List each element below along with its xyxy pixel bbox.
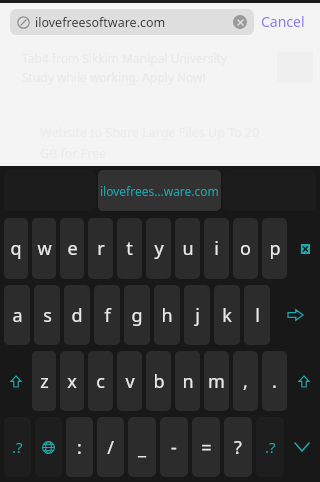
button[interactable]: u [175,218,200,279]
staticText: d [71,303,83,328]
button[interactable]: r [88,218,113,279]
staticText: y [154,236,164,261]
staticText: Tab4 from Sikkim Manipal University [22,50,228,66]
staticText: g [131,303,143,328]
button[interactable]: Reader settings [20,239,58,277]
staticText: Cancel [261,12,305,31]
staticText: ilovefrees…ware.com [100,183,219,199]
button[interactable]: l [244,285,270,345]
staticText: c [96,369,105,394]
button[interactable]: a [4,285,30,345]
staticText: = [201,435,212,460]
staticText: .? [12,437,23,457]
staticText: Study while working. Apply Now! [22,69,206,85]
button[interactable]: p [262,218,287,279]
button[interactable]: y [146,218,171,279]
staticText: k [222,303,232,328]
staticText: ? [234,435,242,460]
staticText: t [126,236,133,261]
staticText: i [214,236,219,261]
staticText: , [243,369,248,394]
button[interactable]: o [233,218,258,279]
button[interactable]: Hide keyboard [288,417,316,477]
button[interactable]: d [64,285,90,345]
staticText: o [240,236,251,261]
button[interactable]: n [175,351,200,411]
button[interactable]: ilovefrees…ware.com [98,170,221,211]
staticText: - [171,435,177,460]
button[interactable]: .? [256,417,284,477]
staticText: .? [265,437,276,457]
staticText: h [161,303,173,328]
staticText: : [77,435,82,460]
button[interactable]: ilovefreesoftware.com [10,9,254,35]
button[interactable]: v [117,351,142,411]
button[interactable]: g [124,285,150,345]
staticText: v [125,369,135,394]
staticText: _ [138,435,146,460]
staticText: s [43,303,52,328]
button[interactable]: _ [128,417,156,477]
button[interactable]: Backspace [291,218,316,279]
staticText: w [37,236,52,261]
button[interactable]: w [32,218,56,279]
staticText: l [255,303,260,328]
button[interactable]: / [97,417,124,477]
button[interactable]: q [4,218,28,279]
button[interactable]: x [60,351,84,411]
button[interactable]: k [214,285,240,345]
staticText: z [40,369,49,394]
button[interactable]: Shift [291,351,316,411]
button[interactable]: e [60,218,84,279]
button[interactable]: = [192,417,220,477]
staticText: x [67,369,77,394]
button[interactable]: Cancel [254,8,312,35]
button[interactable]: m [204,351,229,411]
button[interactable]: : [66,417,93,477]
staticText: j [195,303,200,328]
staticText: b [153,369,165,394]
button[interactable]: , [233,351,258,411]
button[interactable]: c [88,351,113,411]
button[interactable]: i [204,218,229,279]
button[interactable]: . [262,351,287,411]
button[interactable]: .? [4,417,31,477]
button[interactable]: ? [224,417,252,477]
button[interactable]: z [32,351,56,411]
staticText: r [97,236,105,261]
staticText: n [182,369,194,394]
staticText: . [272,369,277,394]
staticText: f [104,303,111,328]
button[interactable]: Go [274,285,316,345]
button[interactable]: Shift [4,351,28,411]
button[interactable]: Change language [35,417,62,477]
button[interactable]: t [117,218,142,279]
button[interactable]: j [184,285,210,345]
staticText: e [67,236,78,261]
staticText: / [107,435,114,460]
button[interactable]: s [34,285,60,345]
staticText: m [208,369,225,394]
button[interactable]: b [146,351,171,411]
button[interactable]: Clear text [233,15,247,29]
staticText: a [12,303,23,328]
button[interactable]: h [154,285,180,345]
staticText: ilovefreesoftware.com [35,14,166,31]
staticText: q [10,236,22,261]
button[interactable]: - [160,417,188,477]
button[interactable]: f [94,285,120,345]
staticText: p [269,236,281,261]
staticText: u [182,236,194,261]
